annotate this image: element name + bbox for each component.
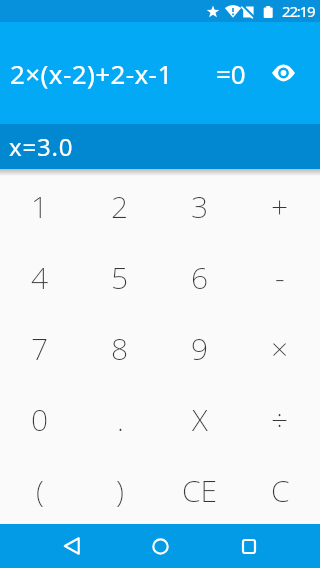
staticText: 2×(x-2)+2-x-1	[10, 56, 173, 91]
button[interactable]	[227, 524, 271, 568]
staticText: 0	[31, 399, 49, 440]
staticText: +	[271, 186, 289, 227]
staticText: ×	[271, 328, 289, 369]
button[interactable]: +	[240, 169, 320, 240]
button[interactable]: 0	[0, 382, 80, 453]
staticText: ÷	[271, 399, 289, 440]
staticText: .	[117, 399, 124, 440]
staticText: 5	[111, 257, 129, 298]
staticText: X	[192, 399, 208, 440]
button[interactable]: ×	[240, 311, 320, 382]
button[interactable]: C	[240, 453, 320, 524]
staticText: 2	[111, 186, 129, 227]
staticText: )	[116, 470, 124, 511]
staticText: C	[271, 470, 290, 511]
staticText: CE	[182, 470, 218, 511]
button[interactable]	[138, 524, 182, 568]
staticText: 7	[31, 328, 49, 369]
staticText: 8	[111, 328, 129, 369]
staticText: 22:19	[282, 1, 315, 21]
button[interactable]: 7	[0, 311, 80, 382]
staticText: 4	[31, 257, 49, 298]
button[interactable]: 3	[160, 169, 240, 240]
button[interactable]: )	[80, 453, 160, 524]
button[interactable]: ÷	[240, 382, 320, 453]
button[interactable]: 1	[0, 169, 80, 240]
staticText: (	[36, 470, 44, 511]
staticText: 6	[191, 257, 209, 298]
button[interactable]	[50, 524, 94, 568]
staticText: 9	[191, 328, 209, 369]
staticText: =0	[216, 56, 246, 91]
staticText: -	[275, 257, 285, 298]
button[interactable]	[261, 51, 305, 95]
button[interactable]: .	[80, 382, 160, 453]
button[interactable]: (	[0, 453, 80, 524]
staticText: 3	[191, 186, 209, 227]
button[interactable]: 5	[80, 240, 160, 311]
button[interactable]: 8	[80, 311, 160, 382]
button[interactable]: CE	[160, 453, 240, 524]
button[interactable]: X	[160, 382, 240, 453]
button[interactable]: 6	[160, 240, 240, 311]
button[interactable]: -	[240, 240, 320, 311]
staticText: 1	[31, 186, 49, 227]
button[interactable]: 4	[0, 240, 80, 311]
staticText: x=3.0	[9, 130, 74, 163]
button[interactable]: 9	[160, 311, 240, 382]
button[interactable]: 2	[80, 169, 160, 240]
